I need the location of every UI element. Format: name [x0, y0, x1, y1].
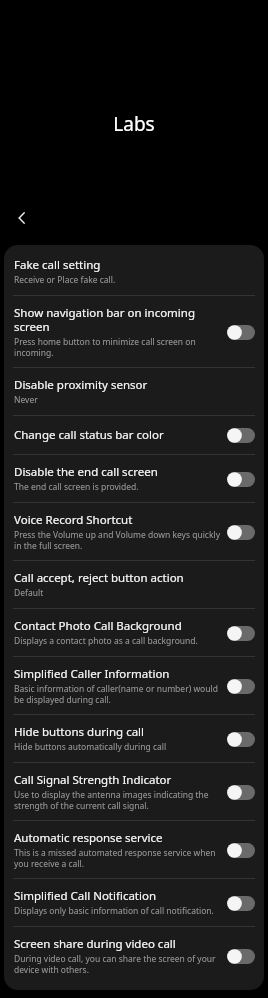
staticText: Simplified Caller Information: [14, 666, 170, 682]
staticText: Basic information of caller(name or numb…: [14, 683, 220, 705]
button[interactable]: Show navigation bar on incoming screen: [4, 296, 264, 367]
staticText: Voice Record Shortcut: [14, 512, 133, 528]
button[interactable]: Fake call setting: [4, 248, 264, 295]
button[interactable]: Change call status bar color: [4, 416, 264, 454]
staticText: Receive or Place fake call.: [14, 274, 116, 286]
staticText: Disable the end call screen: [14, 464, 158, 480]
staticText: During video call, you can share the scr…: [14, 953, 220, 975]
button[interactable]: Toggle: [226, 840, 256, 860]
staticText: Contact Photo Call Background: [14, 618, 182, 634]
staticText: Call Signal Strength Indicator: [14, 772, 172, 788]
button[interactable]: Call Signal Strength Indicator: [4, 763, 264, 820]
staticText: Never: [14, 394, 38, 406]
button[interactable]: Contact Photo Call Background: [4, 609, 264, 656]
button[interactable]: Toggle: [226, 522, 256, 542]
button[interactable]: Toggle: [226, 425, 256, 445]
staticText: Displays only basic information of call …: [14, 905, 214, 917]
button[interactable]: Hide buttons during call: [4, 715, 264, 762]
staticText: Labs: [113, 111, 155, 137]
staticText: Screen share during video call: [14, 936, 176, 952]
button[interactable]: Toggle: [226, 893, 256, 913]
staticText: Simplified Call Notification: [14, 888, 157, 904]
button[interactable]: Disable the end call screen: [4, 455, 264, 502]
button[interactable]: Automatic response service: [4, 821, 264, 878]
staticText: This is a missed automated response serv…: [14, 847, 220, 869]
button[interactable]: Toggle: [226, 623, 256, 643]
button[interactable]: Toggle: [226, 676, 256, 696]
staticText: Disable proximity sensor: [14, 377, 148, 393]
button[interactable]: Simplified Caller Information: [4, 657, 264, 714]
staticText: Fake call setting: [14, 257, 101, 273]
staticText: Show navigation bar on incoming screen: [14, 305, 220, 335]
button[interactable]: Back: [8, 204, 36, 232]
staticText: The end call screen is provided.: [14, 481, 139, 493]
staticText: Call accept, reject button action: [14, 570, 184, 586]
staticText: Hide buttons automatically during call: [14, 741, 167, 753]
button[interactable]: Toggle: [226, 322, 256, 342]
staticText: Use to display the antenna images indica…: [14, 789, 220, 811]
button[interactable]: Voice Record Shortcut: [4, 503, 264, 560]
button[interactable]: Toggle: [226, 946, 256, 966]
staticText: Hide buttons during call: [14, 724, 145, 740]
staticText: Default: [14, 587, 44, 599]
staticText: Change call status bar color: [14, 427, 164, 443]
button[interactable]: Call accept, reject button action: [4, 561, 264, 608]
staticText: Automatic response service: [14, 830, 163, 846]
button[interactable]: Toggle: [226, 729, 256, 749]
button[interactable]: Toggle: [226, 469, 256, 489]
button[interactable]: Disable proximity sensor: [4, 368, 264, 415]
staticText: Press the Volume up and Volume down keys…: [14, 529, 220, 551]
button[interactable]: Simplified Call Notification: [4, 879, 264, 926]
button[interactable]: Screen share during video call: [4, 927, 264, 984]
button[interactable]: Toggle: [226, 782, 256, 802]
staticText: Displays a contact photo as a call backg…: [14, 635, 198, 647]
staticText: Press home button to minimize call scree…: [14, 336, 220, 358]
